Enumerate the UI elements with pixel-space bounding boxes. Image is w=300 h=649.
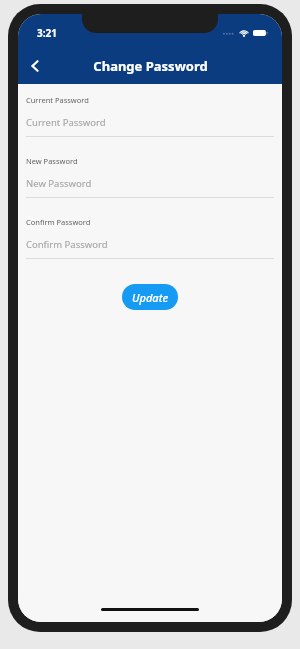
staticText: 3:21 [37, 26, 57, 40]
staticText: Change Password [93, 57, 208, 75]
button[interactable]: Current Password [18, 95, 282, 137]
button[interactable]: Back [18, 49, 52, 83]
button[interactable]: New Password [18, 156, 282, 198]
staticText: Confirm Password [26, 217, 91, 227]
staticText: New Password [26, 156, 78, 166]
staticText: Confirm Password [26, 238, 108, 251]
staticText: New Password [26, 177, 92, 190]
button[interactable]: Confirm Password [18, 217, 282, 259]
staticText: Update [132, 290, 169, 305]
staticText: Current Password [26, 95, 89, 105]
staticText: Current Password [26, 116, 106, 129]
button[interactable]: Update [122, 284, 178, 310]
